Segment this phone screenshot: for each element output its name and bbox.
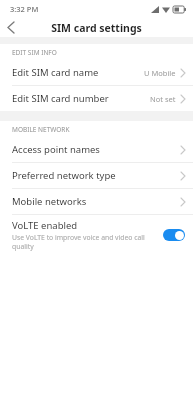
staticText: MOBILE NETWORK	[12, 125, 70, 134]
staticText: U Mobile	[144, 68, 176, 78]
staticText: Preferred network type	[12, 169, 116, 182]
button[interactable]: Edit SIM card number	[0, 86, 193, 111]
staticText: Edit SIM card name	[12, 66, 99, 79]
button[interactable]: VoLTE enabled	[0, 215, 193, 256]
button[interactable]: Back	[0, 18, 22, 37]
staticText: Edit SIM card number	[12, 92, 109, 105]
staticText: SIM card settings	[51, 21, 142, 35]
staticText: EDIT SIM INFO	[12, 48, 57, 57]
button[interactable]: Edit SIM card name	[0, 60, 193, 86]
button[interactable]: Preferred network type	[0, 163, 193, 189]
staticText: Mobile networks	[12, 195, 87, 208]
staticText: Not set	[150, 94, 176, 104]
staticText: Access point names	[12, 143, 100, 156]
button[interactable]: Mobile networks	[0, 189, 193, 215]
button[interactable]: Access point names	[0, 137, 193, 163]
staticText: Use VoLTE to improve voice and video cal…	[12, 233, 159, 251]
staticText: VoLTE enabled	[12, 219, 78, 232]
staticText: 3:32 PM	[10, 4, 39, 14]
button[interactable]: VoLTE enabled toggle	[163, 229, 185, 241]
